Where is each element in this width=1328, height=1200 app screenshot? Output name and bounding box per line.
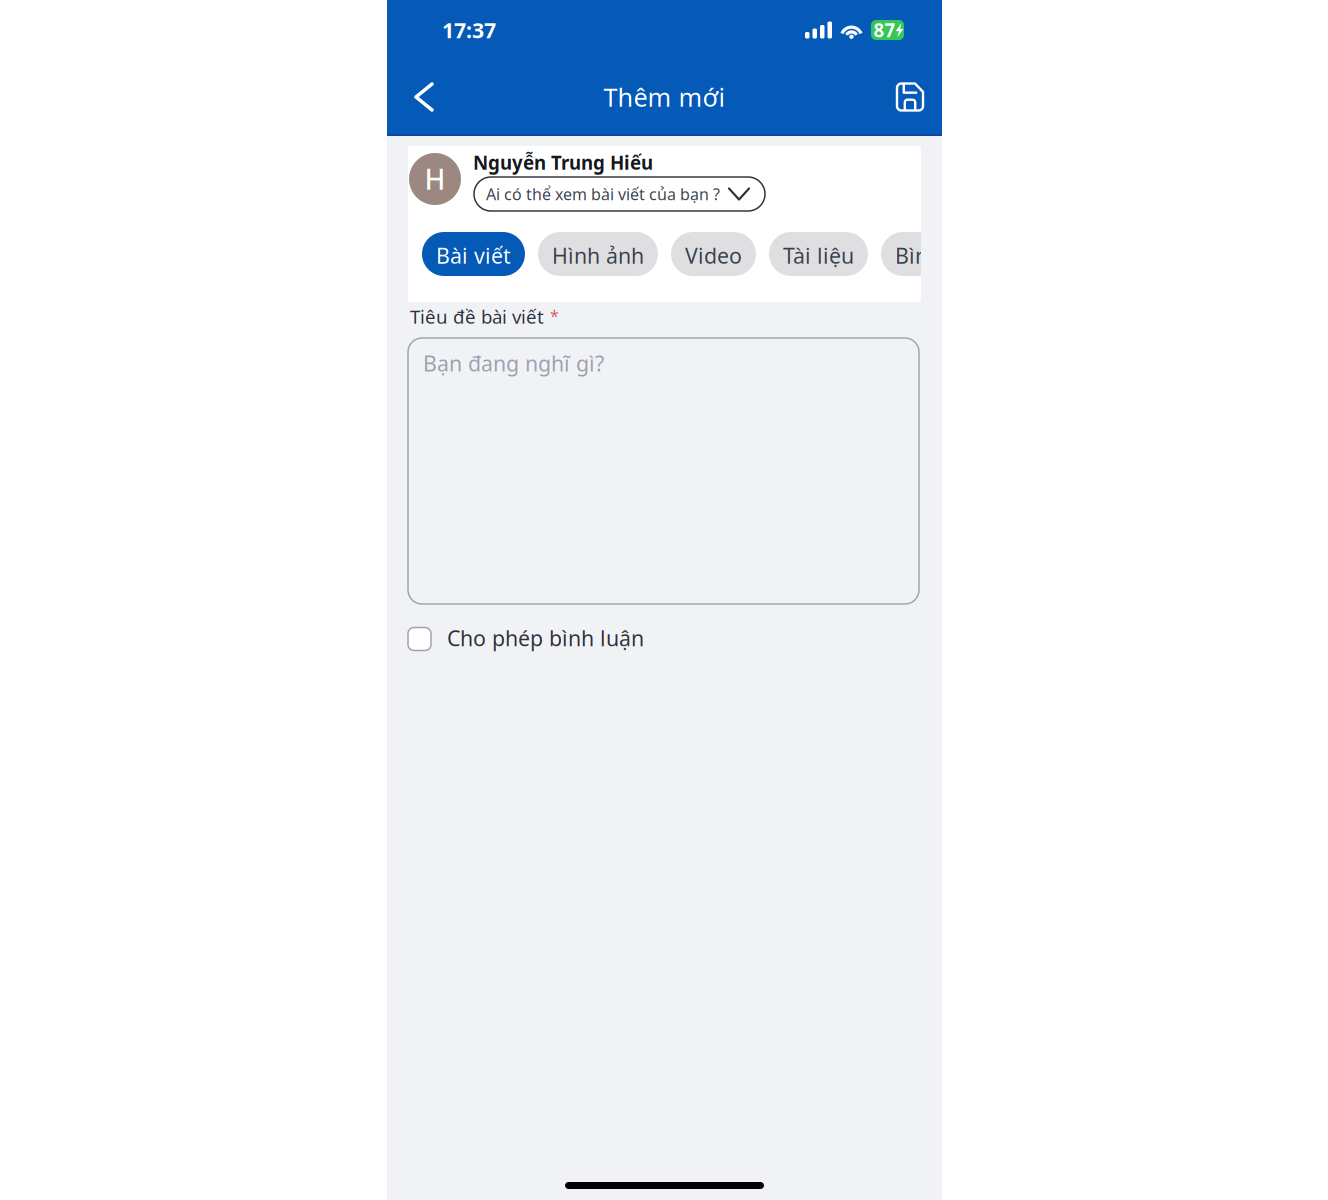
- staticText: Tài liệu: [783, 241, 854, 270]
- button[interactable]: Bài viết: [422, 232, 525, 276]
- staticText: H: [424, 160, 445, 198]
- staticText: *: [550, 305, 559, 326]
- staticText: Bình luận: [895, 241, 991, 270]
- staticText: Bạn đang nghĩ gì?: [423, 349, 604, 377]
- staticText: Cho phép bình luận: [447, 624, 644, 652]
- staticText: Hình ảnh: [552, 241, 644, 270]
- staticText: Thêm mới: [603, 80, 725, 114]
- button[interactable]: Hình ảnh: [538, 232, 658, 276]
- staticText: 17:37: [442, 16, 496, 44]
- staticText: Bài viết: [436, 241, 511, 270]
- button[interactable]: Save: [880, 63, 940, 130]
- button[interactable]: Cho phép bình luận: [408, 619, 919, 659]
- button[interactable]: Bình luận: [881, 232, 1005, 276]
- staticText: Nguyễn Trung Hiếu: [473, 150, 653, 175]
- button[interactable]: Back: [399, 64, 455, 130]
- staticText: Tiêu đề bài viết: [410, 304, 544, 329]
- button[interactable]: Video: [671, 232, 756, 276]
- staticText: Video: [685, 241, 742, 270]
- staticText: Ai có thể xem bài viết của bạn ?: [486, 183, 720, 205]
- button[interactable]: Ai có thể xem bài viết của bạn ?: [474, 177, 765, 211]
- staticText: 87: [873, 18, 895, 42]
- button[interactable]: Tài liệu: [769, 232, 868, 276]
